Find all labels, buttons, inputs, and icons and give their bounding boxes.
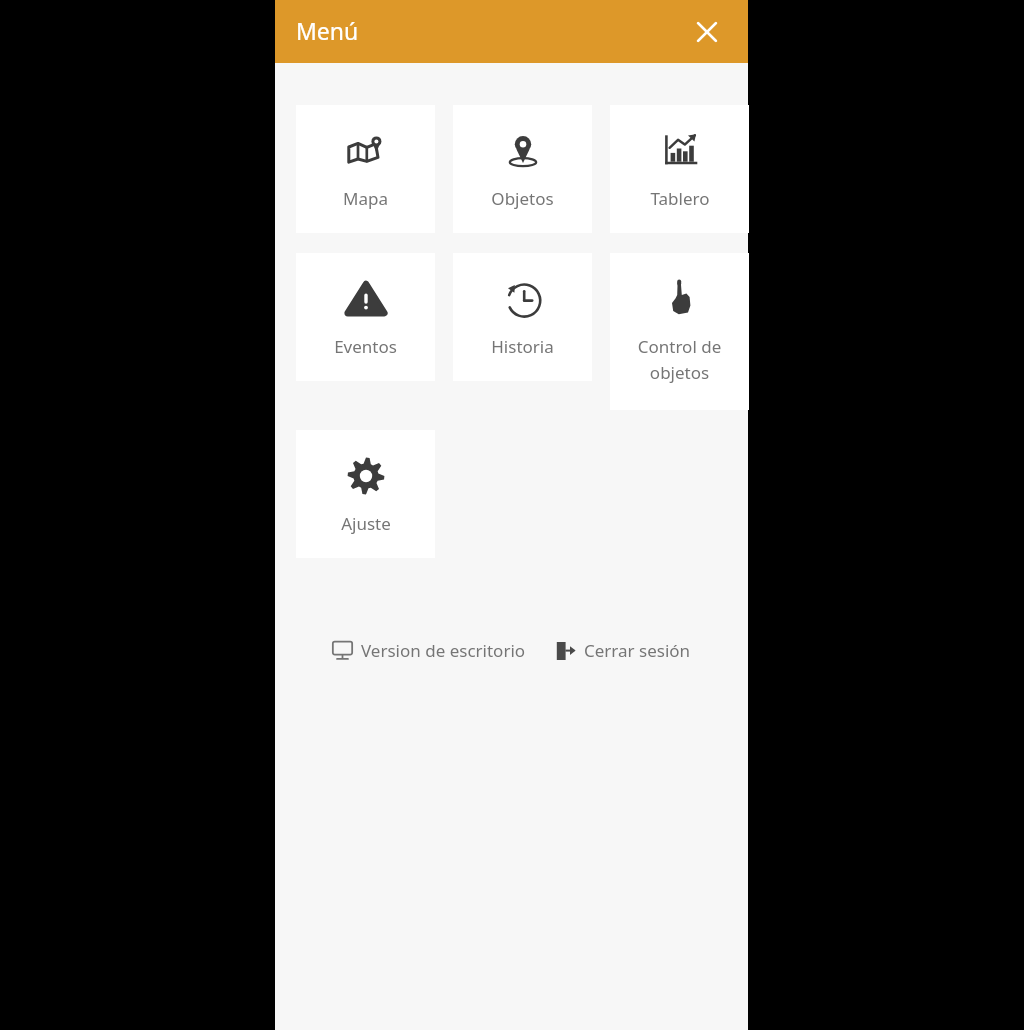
button[interactable]: Cerrar sesión — [552, 633, 695, 668]
button[interactable]: Version de escritorio — [328, 633, 530, 668]
staticText: Tablero — [650, 187, 710, 210]
staticText: Mapa — [343, 187, 388, 210]
staticText: Menú — [296, 15, 359, 46]
staticText: Cerrar sesión — [584, 639, 691, 662]
staticText: Eventos — [334, 335, 397, 358]
button[interactable]: Cerrar — [685, 10, 729, 54]
button[interactable]: Tablero — [610, 105, 749, 233]
button[interactable]: Control de objetos — [610, 253, 749, 410]
staticText: Objetos — [491, 187, 554, 210]
staticText: Version de escritorio — [361, 639, 526, 662]
button[interactable]: Mapa — [296, 105, 435, 233]
staticText: Ajuste — [341, 512, 391, 535]
button[interactable]: Eventos — [296, 253, 435, 381]
staticText: Control de objetos — [616, 335, 743, 384]
button[interactable]: Historia — [453, 253, 592, 381]
button[interactable]: Objetos — [453, 105, 592, 233]
staticText: Historia — [491, 335, 554, 358]
button[interactable]: Ajuste — [296, 430, 435, 558]
